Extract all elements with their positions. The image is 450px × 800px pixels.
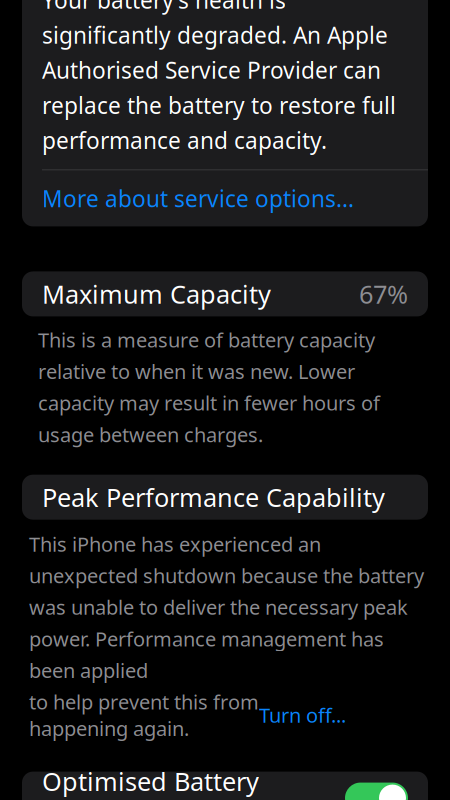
staticText: More about service options... <box>42 183 354 213</box>
staticText: Peak Performance Capability <box>42 480 385 514</box>
staticText: to help prevent this from happening agai… <box>29 688 259 742</box>
button[interactable]: Maximum Capacity <box>22 271 428 316</box>
button[interactable]: More about service options... <box>22 170 428 226</box>
button[interactable]: Turn off... <box>259 702 346 728</box>
button[interactable]: Peak Performance Capability <box>22 475 428 520</box>
staticText: Turn off... <box>259 702 346 728</box>
staticText: This is a measure of battery capacity re… <box>38 326 380 448</box>
staticText: This iPhone has experienced an unexpecte… <box>29 531 424 683</box>
staticText: Your battery's health is significantly d… <box>42 0 396 155</box>
staticText: 67% <box>359 277 408 311</box>
staticText: Maximum Capacity <box>42 277 271 311</box>
button[interactable]: Optimised Battery Charging <box>345 783 408 800</box>
staticText: Optimised Battery Charging <box>42 764 259 800</box>
